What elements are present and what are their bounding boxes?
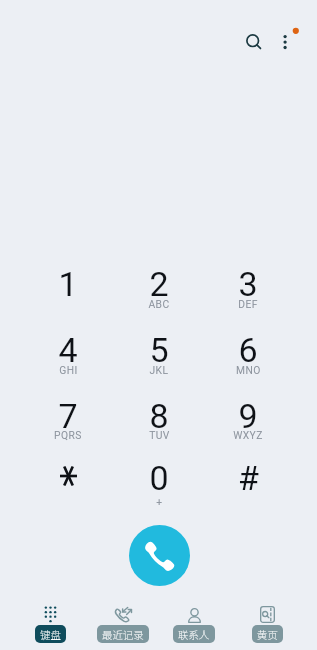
- button[interactable]: [203, 384, 293, 442]
- button[interactable]: [203, 251, 293, 309]
- staticText: 3: [238, 264, 258, 304]
- staticText: #: [238, 458, 259, 498]
- staticText: 4: [58, 330, 78, 370]
- staticText: 5: [149, 330, 169, 370]
- staticText: 8: [149, 396, 169, 436]
- button[interactable]: Search: [238, 26, 268, 56]
- button[interactable]: More options: [273, 22, 303, 52]
- button[interactable]: [114, 445, 204, 503]
- button[interactable]: [114, 251, 204, 309]
- staticText: GHI: [59, 364, 78, 376]
- staticText: 6: [238, 330, 258, 370]
- staticText: 9: [238, 396, 258, 436]
- staticText: PQRS: [54, 429, 82, 441]
- staticText: DEF: [238, 298, 258, 310]
- button[interactable]: 最近记录: [87, 602, 159, 648]
- staticText: ABC: [148, 298, 170, 310]
- staticText: 0: [149, 458, 169, 498]
- button[interactable]: [114, 384, 204, 442]
- staticText: 2: [149, 264, 169, 304]
- staticText: 7: [58, 396, 78, 436]
- button[interactable]: 联系人: [158, 602, 230, 648]
- staticText: TUV: [149, 429, 170, 441]
- button[interactable]: [203, 318, 293, 376]
- button[interactable]: [23, 318, 113, 376]
- button[interactable]: Call: [129, 525, 190, 586]
- button[interactable]: [114, 318, 204, 376]
- button[interactable]: [23, 445, 113, 503]
- button[interactable]: [203, 445, 293, 503]
- button[interactable]: [23, 251, 113, 309]
- staticText: 1: [58, 264, 78, 304]
- button[interactable]: 键盘: [14, 602, 86, 648]
- staticText: +: [156, 496, 163, 508]
- button[interactable]: [23, 384, 113, 442]
- staticText: 最近记录: [102, 627, 144, 642]
- staticText: 键盘: [40, 627, 61, 642]
- staticText: 黄页: [257, 627, 278, 642]
- staticText: MNO: [236, 364, 261, 376]
- staticText: WXYZ: [233, 429, 263, 441]
- staticText: JKL: [149, 364, 169, 376]
- staticText: 联系人: [178, 627, 210, 642]
- button[interactable]: 黄页: [231, 602, 303, 648]
